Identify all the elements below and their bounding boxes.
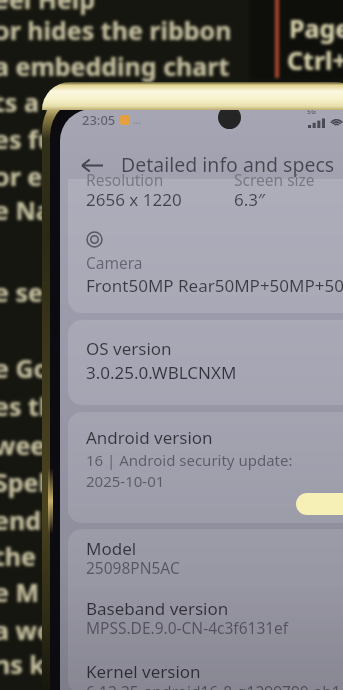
staticText: or hides the ribbon <box>0 13 232 47</box>
staticText: es fu <box>0 122 54 156</box>
button[interactable] <box>68 150 343 313</box>
staticText: Resolution <box>86 169 164 190</box>
staticText: a wo <box>0 613 53 647</box>
staticText: Screen size <box>234 169 315 190</box>
button[interactable] <box>68 320 343 405</box>
staticText: Android version <box>86 426 213 449</box>
staticText: 2656 x 1220 <box>86 188 182 211</box>
staticText: e M <box>0 575 40 609</box>
staticText: Model <box>86 537 137 560</box>
staticText: end <box>0 503 41 537</box>
staticText: eel Help <box>0 0 96 16</box>
staticText: ns k <box>0 647 45 681</box>
staticText: es th <box>0 389 56 423</box>
staticText: 6.12.35-android16-8-g1299790-ab14 <box>86 681 343 690</box>
staticText: e Na <box>0 193 51 227</box>
staticText: Page <box>289 11 343 45</box>
staticText: e se <box>0 275 43 309</box>
staticText: Ctrl+ <box>287 43 343 77</box>
staticText: Camera <box>86 252 143 273</box>
staticText: the <box>0 539 37 573</box>
staticText: a embedding chart <box>0 49 230 83</box>
staticText: 6.3″ <box>234 188 265 211</box>
staticText: 3.0.25.0.WBLCNXM <box>86 361 237 384</box>
staticText: Detailed info and specs <box>121 151 335 178</box>
staticText: Front50MP Rear50MP+50MP+50MP <box>86 274 343 297</box>
staticText: 23:05 <box>82 111 116 129</box>
staticText: ... <box>133 113 142 127</box>
staticText: 2025-10-01 <box>86 471 165 491</box>
staticText: Spel <box>0 465 46 499</box>
staticText: MPSS.DE.9.0-CN-4c3f6131ef <box>86 617 289 638</box>
staticText: e Go <box>0 351 50 385</box>
staticText: Baseband version <box>86 597 229 620</box>
staticText: 16 | Android security update: <box>86 450 293 470</box>
button[interactable] <box>68 529 343 690</box>
staticText: ts a na <box>0 85 77 119</box>
button[interactable]: Back <box>77 153 107 177</box>
staticText: or e <box>0 159 43 193</box>
staticText: wee <box>0 428 46 462</box>
staticText: 5G <box>307 109 317 117</box>
button[interactable] <box>68 412 343 523</box>
staticText: Kernel version <box>86 660 201 683</box>
staticText: OS version <box>86 337 172 360</box>
staticText: 25098PN5AC <box>86 557 180 578</box>
